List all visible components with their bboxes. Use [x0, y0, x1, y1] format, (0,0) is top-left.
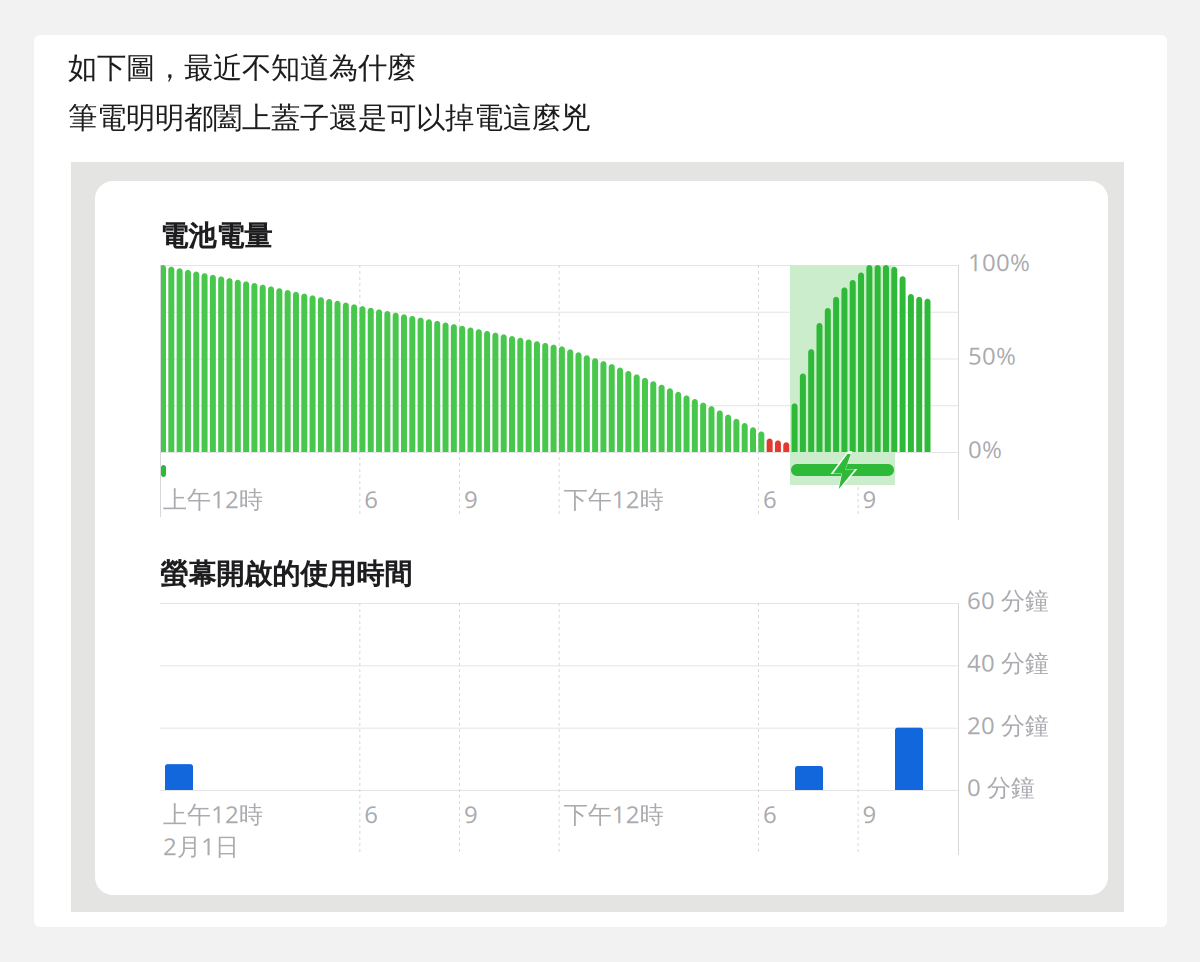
- staticText: 20 分鐘: [967, 709, 1049, 741]
- staticText: 9: [464, 483, 478, 515]
- staticText: 筆電明明都闔上蓋子還是可以掉電這麼兇: [68, 100, 590, 136]
- staticText: 100%: [968, 246, 1030, 278]
- staticText: 9: [464, 798, 478, 830]
- staticText: 6: [364, 483, 378, 515]
- staticText: 50%: [968, 339, 1016, 371]
- staticText: 下午12時: [564, 483, 664, 515]
- staticText: 如下圖，最近不知道為什麼: [68, 50, 416, 86]
- staticText: 6: [763, 483, 777, 515]
- staticText: 40 分鐘: [967, 646, 1049, 678]
- staticText: 0 分鐘: [967, 771, 1035, 803]
- staticText: 9: [863, 483, 877, 515]
- staticText: 2月1日: [163, 830, 239, 862]
- staticText: 上午12時: [163, 483, 263, 515]
- staticText: 電池電量: [160, 219, 272, 253]
- staticText: 6: [364, 798, 378, 830]
- staticText: 上午12時: [163, 798, 263, 830]
- staticText: 9: [863, 798, 877, 830]
- staticText: 6: [763, 798, 777, 830]
- staticText: 下午12時: [564, 798, 664, 830]
- staticText: 60 分鐘: [967, 584, 1049, 616]
- staticText: 0%: [968, 433, 1002, 465]
- staticText: 螢幕開啟的使用時間: [160, 557, 412, 591]
